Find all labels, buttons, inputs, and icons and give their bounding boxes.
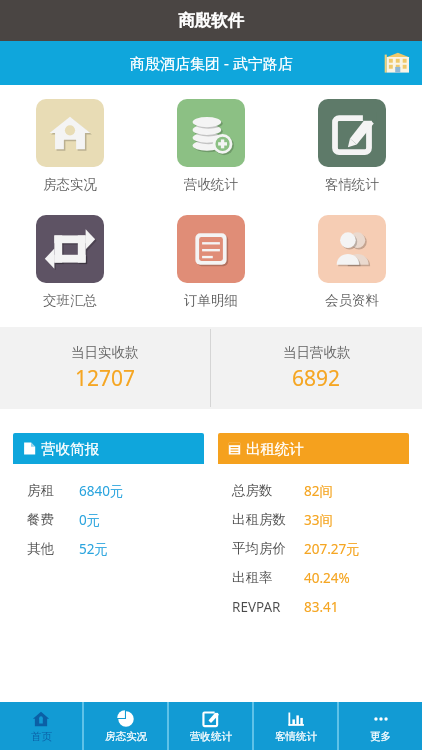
staticText: 0元 [79,511,101,529]
staticText: 207.27元 [304,540,360,558]
button[interactable]: 更多 [339,702,422,750]
staticText: 订单明细 [184,292,238,309]
staticText: 33间 [304,511,333,529]
staticText: 房态实况 [105,730,147,743]
staticText: 营收统计 [184,176,238,193]
button[interactable]: 营收统计 [140,97,281,195]
staticText: REVPAR [232,598,304,616]
button[interactable]: 订单明细 [140,213,281,311]
staticText: 房租 [27,482,79,499]
staticText: 当日实收款 [71,344,139,361]
staticText: 82间 [304,482,333,500]
button[interactable]: 交班汇总 [0,213,140,311]
button[interactable]: 房态实况 [0,97,140,195]
button[interactable]: 营收统计 [169,702,252,750]
staticText: 商殷酒店集团 - 武宁路店 [130,53,293,73]
staticText: 52元 [79,540,108,558]
staticText: 商殷软件 [178,10,244,31]
button[interactable]: 当日实收款 [0,327,210,409]
staticText: 会员资料 [325,292,379,309]
button[interactable]: 房态实况 [84,702,167,750]
staticText: 40.24% [304,569,350,587]
button[interactable]: 营收简报 [13,433,204,645]
staticText: 6840元 [79,482,124,500]
button[interactable]: 首页 [0,702,82,750]
staticText: 交班汇总 [43,292,97,309]
staticText: 营收统计 [190,730,232,743]
staticText: 房态实况 [43,176,97,193]
staticText: 客情统计 [325,176,379,193]
staticText: 12707 [75,364,136,393]
staticText: 6892 [292,364,341,393]
staticText: 营收简报 [41,440,99,458]
staticText: 客情统计 [275,730,317,743]
staticText: 总房数 [232,482,304,499]
staticText: 其他 [27,540,79,557]
button[interactable]: 客情统计 [254,702,337,750]
staticText: 出租率 [232,569,304,586]
staticText: 餐费 [27,511,79,528]
button[interactable]: 当日营收款 [211,327,422,409]
button[interactable]: 出租统计 [218,433,409,645]
staticText: 出租统计 [246,440,304,458]
staticText: 首页 [31,730,52,743]
staticText: 出租房数 [232,511,304,528]
staticText: 平均房价 [232,540,304,557]
staticText: 更多 [370,730,391,743]
button[interactable]: Hotel [382,48,412,78]
staticText: 当日营收款 [283,344,351,361]
button[interactable]: 客情统计 [281,97,422,195]
staticText: 83.41 [304,598,339,616]
button[interactable]: 会员资料 [281,213,422,311]
